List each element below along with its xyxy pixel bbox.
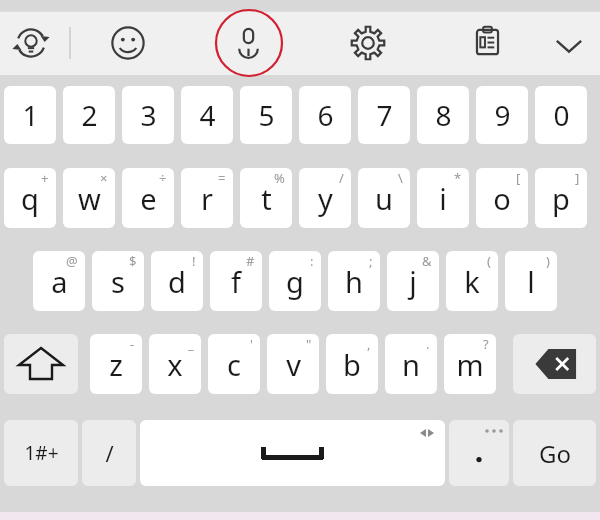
button[interactable]: / <box>82 420 136 486</box>
button[interactable]: j <box>387 251 439 311</box>
button[interactable]: n <box>385 334 437 394</box>
button[interactable]: Shift <box>4 334 78 394</box>
staticText: i <box>439 179 447 218</box>
staticText: j <box>409 262 417 301</box>
button[interactable]: s <box>92 251 144 311</box>
staticText: m <box>456 345 484 384</box>
staticText: 4 <box>199 96 216 134</box>
staticText: . <box>426 335 430 353</box>
staticText: 2 <box>81 96 98 134</box>
staticText: Go <box>539 437 571 470</box>
button[interactable]: b <box>326 334 378 394</box>
button[interactable]: c <box>208 334 260 394</box>
staticText: 6 <box>317 96 334 134</box>
staticText: y <box>318 179 333 218</box>
button[interactable]: 9 <box>476 86 528 144</box>
button[interactable]: r <box>181 168 233 228</box>
staticText: l <box>527 262 535 301</box>
staticText: % <box>274 169 285 187</box>
button[interactable]: o <box>476 168 528 228</box>
button[interactable]: 1#+ <box>4 420 78 486</box>
staticText: = <box>218 169 226 187</box>
staticText: n <box>402 345 420 384</box>
staticText: ÷ <box>159 169 167 187</box>
button[interactable]: y <box>299 168 351 228</box>
staticText: e <box>140 179 157 218</box>
staticText: , <box>367 335 371 353</box>
staticText: c <box>227 345 241 384</box>
button[interactable]: 3 <box>122 86 174 144</box>
staticText: g <box>286 262 304 301</box>
staticText: w <box>78 179 101 218</box>
button[interactable]: d <box>151 251 203 311</box>
staticText: * <box>454 169 462 187</box>
button[interactable]: p <box>535 168 587 228</box>
staticText: ? <box>483 335 489 353</box>
staticText: / <box>105 438 114 468</box>
staticText: b <box>343 345 361 384</box>
staticText: ' <box>250 335 253 353</box>
button[interactable]: Settings <box>351 26 385 60</box>
staticText: : <box>310 252 314 270</box>
button[interactable]: Backspace <box>513 334 596 394</box>
staticText: ! <box>192 252 196 270</box>
staticText: d <box>168 262 186 301</box>
button[interactable]: 8 <box>417 86 469 144</box>
button[interactable]: Hide keyboard <box>553 30 585 62</box>
button[interactable]: g <box>269 251 321 311</box>
staticText: [ <box>516 169 521 187</box>
staticText: \ <box>398 169 403 187</box>
staticText: + <box>41 169 49 187</box>
button[interactable]: 6 <box>299 86 351 144</box>
button[interactable]: k <box>446 251 498 311</box>
staticText: ) <box>546 252 550 270</box>
staticText: 1#+ <box>24 440 59 466</box>
button[interactable]: Suggestions <box>14 26 48 60</box>
button[interactable]: Emoji <box>111 26 145 60</box>
button[interactable]: Clipboard <box>472 25 503 56</box>
staticText: × <box>100 169 108 187</box>
button[interactable]: l <box>505 251 557 311</box>
button[interactable]: u <box>358 168 410 228</box>
staticText: 8 <box>435 96 452 134</box>
button[interactable]: q <box>4 168 56 228</box>
button[interactable]: m <box>444 334 496 394</box>
staticText: v <box>286 345 301 384</box>
button[interactable]: f <box>210 251 262 311</box>
button[interactable]: 2 <box>63 86 115 144</box>
button[interactable]: Voice input <box>233 27 264 58</box>
button[interactable]: 7 <box>358 86 410 144</box>
button[interactable]: v <box>267 334 319 394</box>
staticText: - <box>130 335 135 353</box>
button[interactable]: 4 <box>181 86 233 144</box>
button[interactable]: 1 <box>4 86 56 144</box>
staticText: 5 <box>258 96 275 134</box>
button[interactable]: i <box>417 168 469 228</box>
staticText: o <box>493 179 511 218</box>
button[interactable]: e <box>122 168 174 228</box>
button[interactable]: Go <box>513 420 596 486</box>
staticText: _ <box>188 335 194 353</box>
staticText: ( <box>487 252 491 270</box>
button[interactable]: 5 <box>240 86 292 144</box>
staticText: # <box>246 252 255 270</box>
staticText: u <box>375 179 393 218</box>
staticText: s <box>111 262 125 301</box>
staticText: & <box>422 252 432 270</box>
staticText: r <box>201 179 213 218</box>
button[interactable] <box>449 420 509 486</box>
staticText: $ <box>129 252 137 270</box>
button[interactable]: h <box>328 251 380 311</box>
staticText: ] <box>575 169 580 187</box>
staticText: f <box>231 262 241 301</box>
staticText: 9 <box>494 96 511 134</box>
staticText: / <box>339 169 344 187</box>
staticText: k <box>464 262 480 301</box>
button[interactable]: 0 <box>535 86 587 144</box>
button[interactable]: t <box>240 168 292 228</box>
button[interactable]: z <box>90 334 142 394</box>
button[interactable]: x <box>149 334 201 394</box>
button[interactable]: Space <box>140 420 445 486</box>
button[interactable]: w <box>63 168 115 228</box>
button[interactable]: a <box>33 251 85 311</box>
